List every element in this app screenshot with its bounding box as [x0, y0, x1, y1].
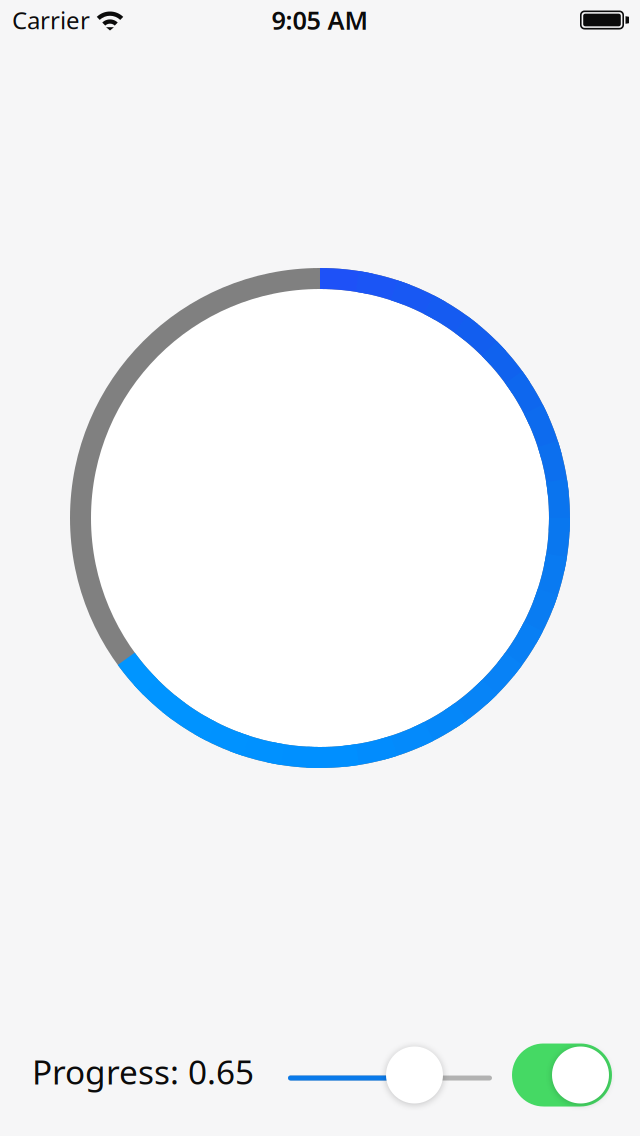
button[interactable]: Toggle: [512, 1043, 612, 1106]
staticText: 9:05 AM: [271, 3, 368, 37]
button[interactable]: Progress slider: [288, 1043, 492, 1107]
staticText: Progress: 0.65: [32, 1049, 254, 1094]
staticText: Carrier: [12, 4, 90, 36]
